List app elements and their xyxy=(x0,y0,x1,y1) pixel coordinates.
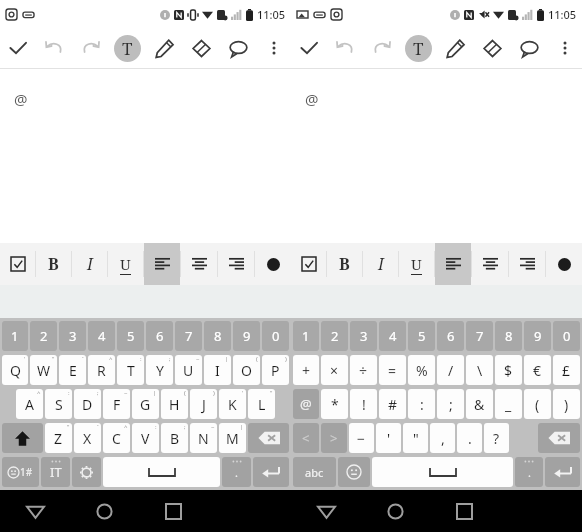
button[interactable]: ) xyxy=(553,389,580,419)
button[interactable]: Undo xyxy=(327,28,363,68)
button[interactable]: @ xyxy=(293,389,319,419)
button[interactable]: Z xyxy=(45,423,72,453)
button[interactable]: 5 xyxy=(117,321,144,351)
button[interactable]: abc xyxy=(293,457,336,487)
button[interactable]: More options xyxy=(548,28,582,68)
button[interactable]: Checklist xyxy=(0,243,35,285)
button[interactable]: Comment xyxy=(511,28,548,68)
button[interactable]: > xyxy=(321,423,347,453)
button[interactable]: : xyxy=(408,389,435,419)
button[interactable]: Pen xyxy=(146,28,183,68)
button[interactable]: Recents xyxy=(430,490,499,532)
button[interactable]: 9 xyxy=(233,321,260,351)
button[interactable]: Home xyxy=(361,490,430,532)
button[interactable]: Align left xyxy=(435,243,471,285)
button[interactable]: U xyxy=(175,355,202,385)
button[interactable]: Bold xyxy=(327,243,362,285)
button[interactable]: K xyxy=(219,389,246,419)
button[interactable]: ; xyxy=(437,389,464,419)
button[interactable]: W xyxy=(30,355,57,385)
button[interactable]: 4 xyxy=(88,321,115,351)
button[interactable]: 6 xyxy=(146,321,173,351)
button[interactable]: / xyxy=(437,355,464,385)
button[interactable]: Space xyxy=(103,457,220,487)
button[interactable]: N xyxy=(190,423,217,453)
button[interactable]: + xyxy=(293,355,319,385)
button[interactable]: . xyxy=(515,457,543,487)
button[interactable]: J xyxy=(190,389,217,419)
button[interactable]: 1 xyxy=(2,321,28,351)
button[interactable]: 2 xyxy=(321,321,348,351)
button[interactable]: Align left xyxy=(144,243,180,285)
button[interactable]: 7 xyxy=(175,321,202,351)
button[interactable]: S xyxy=(45,389,72,419)
button[interactable]: Underline xyxy=(108,243,143,285)
button[interactable]: Bullet xyxy=(255,243,291,285)
button[interactable]: Eraser xyxy=(474,28,511,68)
button[interactable]: Shift xyxy=(2,423,43,453)
button[interactable]: P xyxy=(262,355,289,385)
button[interactable]: O xyxy=(233,355,260,385)
button[interactable]: * xyxy=(321,389,348,419)
button[interactable]: Bold xyxy=(36,243,71,285)
button[interactable]: Recents xyxy=(139,490,208,532)
button[interactable]: I xyxy=(204,355,231,385)
button[interactable]: F xyxy=(103,389,130,419)
button[interactable]: 0 xyxy=(553,321,580,351)
button[interactable]: 5 xyxy=(408,321,435,351)
button[interactable]: Italic xyxy=(72,243,107,285)
button[interactable]: 4 xyxy=(379,321,406,351)
button[interactable]: Settings xyxy=(72,457,101,487)
button[interactable]: 3 xyxy=(350,321,377,351)
button[interactable]: Checklist xyxy=(291,243,326,285)
button[interactable]: ? xyxy=(484,423,509,453)
button[interactable]: × xyxy=(321,355,348,385)
button[interactable]: Align center xyxy=(181,243,217,285)
button[interactable]: M xyxy=(219,423,246,453)
button[interactable]: B xyxy=(161,423,188,453)
button[interactable]: Eraser xyxy=(183,28,220,68)
button[interactable]: Redo xyxy=(72,28,109,68)
button[interactable]: Bullet xyxy=(546,243,582,285)
button[interactable]: 3 xyxy=(59,321,86,351)
button[interactable]: ' xyxy=(376,423,401,453)
button[interactable]: E xyxy=(59,355,86,385)
button[interactable]: 1 xyxy=(293,321,319,351)
button[interactable]: ( xyxy=(524,389,551,419)
button[interactable]: Back xyxy=(0,490,70,532)
button[interactable]: . xyxy=(222,457,251,487)
button[interactable]: Redo xyxy=(363,28,400,68)
button[interactable]: Emoji xyxy=(338,457,370,487)
button[interactable]: % xyxy=(408,355,435,385)
button[interactable]: Backspace xyxy=(248,423,289,453)
button[interactable]: \ xyxy=(466,355,493,385)
button[interactable]: £ xyxy=(553,355,580,385)
button[interactable]: < xyxy=(293,423,319,453)
button[interactable]: 8 xyxy=(495,321,522,351)
button[interactable]: X xyxy=(74,423,101,453)
button[interactable]: Done xyxy=(291,28,327,68)
button[interactable]: Align right xyxy=(218,243,254,285)
button[interactable]: € xyxy=(524,355,551,385)
button[interactable]: − xyxy=(349,423,374,453)
button[interactable]: ! xyxy=(350,389,377,419)
button[interactable]: Home xyxy=(70,490,139,532)
button[interactable]: Emoji and symbols xyxy=(2,457,39,487)
button[interactable]: Align center xyxy=(472,243,508,285)
button[interactable]: # xyxy=(379,389,406,419)
button[interactable]: Text xyxy=(400,28,437,68)
button[interactable]: . xyxy=(457,423,482,453)
button[interactable]: _ xyxy=(495,389,522,419)
button[interactable]: D xyxy=(74,389,101,419)
button[interactable]: " xyxy=(403,423,428,453)
button[interactable]: Undo xyxy=(36,28,72,68)
button[interactable]: Backspace xyxy=(538,423,580,453)
button[interactable]: L xyxy=(248,389,275,419)
button[interactable]: IT xyxy=(41,457,70,487)
button[interactable]: 9 xyxy=(524,321,551,351)
button[interactable]: 6 xyxy=(437,321,464,351)
button[interactable]: Q xyxy=(2,355,28,385)
button[interactable]: Comment xyxy=(220,28,257,68)
button[interactable]: V xyxy=(132,423,159,453)
button[interactable]: G xyxy=(132,389,159,419)
